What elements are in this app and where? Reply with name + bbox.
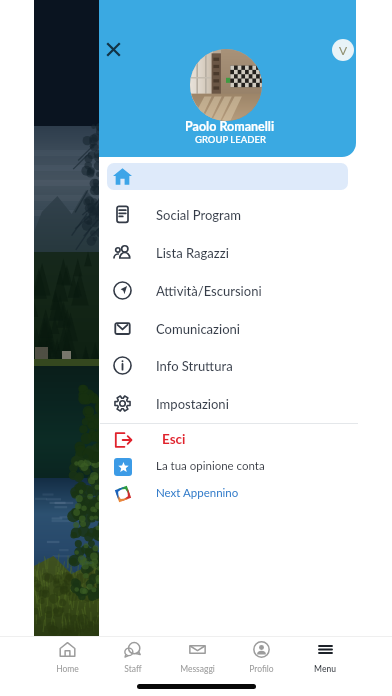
button[interactable]: Profilo	[229, 641, 293, 674]
button[interactable]: Profile initial	[332, 39, 354, 61]
button[interactable]: Impostazioni	[107, 390, 348, 417]
staticText: Attività/Escursioni	[156, 283, 262, 299]
staticText: Messaggi	[180, 664, 215, 674]
staticText: Esci	[162, 431, 186, 447]
staticText: Lista Ragazzi	[156, 245, 229, 261]
button[interactable]: Messaggi	[165, 641, 229, 674]
staticText: Home	[56, 664, 79, 674]
button[interactable]: Social Program	[107, 201, 348, 228]
button[interactable]: Close	[95, 31, 131, 67]
staticText: Paolo Romanelli	[185, 119, 275, 134]
button[interactable]: La tua opinione conta	[107, 453, 348, 479]
staticText: Profilo	[249, 664, 274, 674]
button[interactable]: Lista Ragazzi	[107, 239, 348, 266]
button[interactable]: Next Appennino	[107, 480, 348, 506]
button[interactable]: Staff	[100, 641, 165, 674]
staticText: Menu	[314, 664, 336, 674]
button[interactable]: Comunicazioni	[107, 315, 348, 342]
staticText: La tua opinione conta	[156, 459, 265, 473]
staticText: GROUP LEADER	[195, 134, 266, 145]
staticText: Social Program	[156, 207, 242, 223]
button[interactable]: Home	[107, 163, 348, 190]
staticText: Impostazioni	[156, 396, 229, 412]
button[interactable]: Home	[35, 641, 100, 674]
button[interactable]: Attività/Escursioni	[107, 277, 348, 304]
staticText: Comunicazioni	[156, 321, 240, 337]
button[interactable]: Menu	[293, 641, 357, 674]
button[interactable]: Esci	[107, 426, 348, 452]
staticText: Staff	[124, 664, 142, 674]
button[interactable]: Info Struttura	[107, 352, 348, 379]
staticText: Next Appennino	[156, 486, 239, 500]
staticText: Info Struttura	[156, 358, 233, 374]
staticText: V	[339, 43, 348, 57]
